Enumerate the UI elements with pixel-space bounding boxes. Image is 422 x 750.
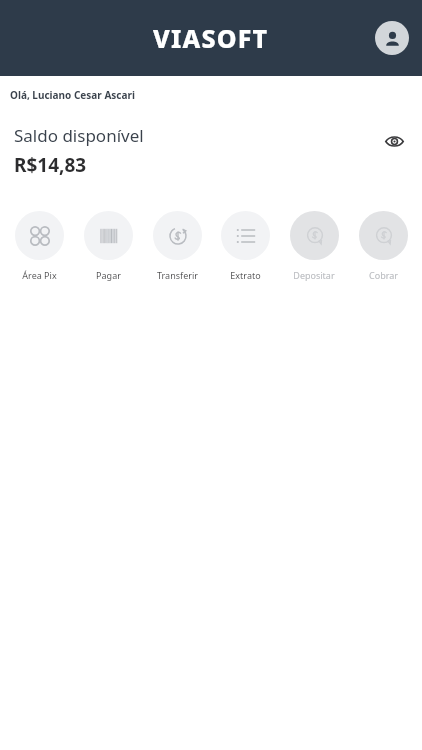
button[interactable]: Pagar (77, 211, 139, 281)
staticText: Pagar (96, 269, 121, 281)
staticText: VIASOFT (153, 21, 269, 55)
staticText: Área Pix (22, 269, 57, 281)
button[interactable]: Perfil (375, 21, 409, 55)
staticText: R$14,83 (14, 152, 87, 178)
staticText: Transferir (157, 269, 198, 281)
button[interactable]: Cobrar (352, 211, 414, 281)
button[interactable]: Área Pix (8, 211, 70, 281)
staticText: Cobrar (369, 269, 398, 281)
staticText: Saldo disponível (14, 124, 144, 147)
button[interactable]: Mostrar ou ocultar saldo (380, 127, 408, 155)
button[interactable]: Depositar (283, 211, 345, 281)
button[interactable]: Transferir (146, 211, 208, 281)
staticText: Olá, Luciano Cesar Ascari (10, 88, 135, 102)
staticText: Extrato (230, 269, 261, 281)
staticText: Depositar (293, 269, 335, 281)
button[interactable]: Extrato (214, 211, 276, 281)
